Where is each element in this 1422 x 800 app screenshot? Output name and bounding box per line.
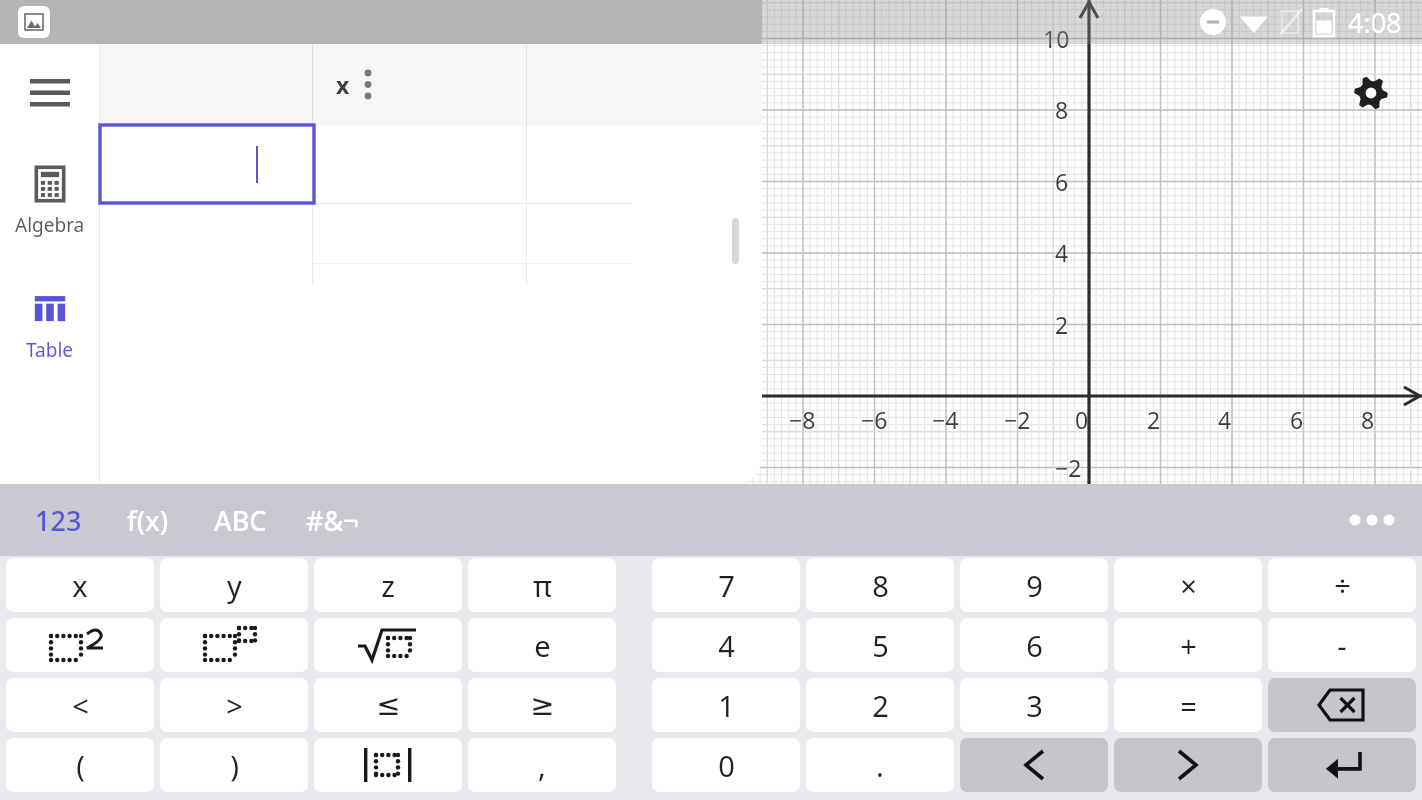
staticText: Algebra [15, 212, 85, 238]
staticText: π [533, 566, 552, 605]
staticText: 8 [1055, 94, 1069, 125]
button[interactable]: 1 [652, 678, 800, 732]
staticText: 0 [718, 746, 735, 785]
staticText: ÷ [1334, 566, 1351, 605]
button[interactable]: Square [6, 618, 154, 672]
button[interactable]: - [1268, 618, 1416, 672]
button[interactable]: ÷ [1268, 558, 1416, 612]
button[interactable]: 4 [652, 618, 800, 672]
button[interactable]: ( [6, 738, 154, 792]
staticText: z [381, 566, 395, 605]
button[interactable]: , [468, 738, 616, 792]
button[interactable]: ABC [194, 484, 286, 556]
button[interactable]: e [468, 618, 616, 672]
button[interactable]: . [806, 738, 954, 792]
staticText: 7 [718, 566, 735, 605]
button[interactable]: Move right [1114, 738, 1262, 792]
staticText: 4:08 [1348, 4, 1402, 41]
staticText: 3 [1026, 686, 1043, 725]
staticText: 2 [872, 686, 889, 725]
staticText: 8 [872, 566, 889, 605]
button[interactable]: Move left [960, 738, 1108, 792]
staticText: 1 [718, 686, 735, 725]
button[interactable]: 9 [960, 558, 1108, 612]
staticText: −8 [789, 404, 816, 435]
button[interactable]: × [1114, 558, 1262, 612]
button[interactable]: 8 [806, 558, 954, 612]
button[interactable]: Absolute value [314, 738, 462, 792]
button[interactable]: y [160, 558, 308, 612]
button[interactable]: ≥ [468, 678, 616, 732]
button[interactable]: Square root [314, 618, 462, 672]
button[interactable]: = [1114, 678, 1262, 732]
staticText: 0 [1075, 404, 1089, 435]
button[interactable]: Image [18, 6, 50, 38]
staticText: 6 [1290, 404, 1304, 435]
button[interactable]: More options [1344, 492, 1400, 548]
button[interactable]: 7 [652, 558, 800, 612]
button[interactable]: Power [160, 618, 308, 672]
staticText: 2 [1147, 404, 1161, 435]
staticText: ≥ [530, 688, 555, 722]
staticText: - [1337, 626, 1347, 665]
button[interactable]: 6 [960, 618, 1108, 672]
staticText: −6 [861, 404, 888, 435]
staticText: Table [26, 337, 74, 363]
staticText: −2 [1055, 452, 1082, 483]
staticText: 8 [1361, 404, 1375, 435]
staticText: 6 [1026, 626, 1043, 665]
staticText: + [1180, 626, 1197, 665]
button[interactable] [100, 125, 314, 203]
staticText: . [876, 746, 884, 785]
button[interactable]: 0 [652, 738, 800, 792]
button[interactable]: 123 [14, 484, 102, 556]
button[interactable]: 5 [806, 618, 954, 672]
staticText: 9 [1026, 566, 1043, 605]
staticText: ( [76, 746, 85, 785]
button[interactable]: 3 [960, 678, 1108, 732]
staticText: 4 [1055, 237, 1069, 268]
staticText: e [534, 626, 551, 665]
staticText: ≤ [376, 688, 401, 722]
button[interactable]: x [6, 558, 154, 612]
staticText: = [1180, 686, 1197, 725]
button[interactable]: ) [160, 738, 308, 792]
button[interactable]: Enter [1268, 738, 1416, 792]
button[interactable]: x [336, 60, 377, 108]
staticText: x [72, 566, 88, 605]
button[interactable]: Table [0, 286, 99, 367]
staticText: 6 [1055, 166, 1069, 197]
staticText: < [72, 686, 89, 725]
button[interactable]: π [468, 558, 616, 612]
staticText: y [227, 566, 242, 605]
button[interactable]: + [1114, 618, 1262, 672]
button[interactable]: > [160, 678, 308, 732]
button[interactable]: Algebra [0, 161, 99, 242]
button[interactable]: #&¬ [286, 484, 378, 556]
staticText: x [336, 69, 350, 100]
button[interactable]: Menu [19, 62, 81, 124]
staticText: f(x) [127, 502, 169, 539]
button[interactable]: Settings [1348, 70, 1394, 116]
staticText: −4 [932, 404, 959, 435]
button[interactable]: < [6, 678, 154, 732]
button[interactable]: Backspace [1268, 678, 1416, 732]
staticText: 2 [1055, 309, 1069, 340]
staticText: 4 [1218, 404, 1232, 435]
staticText: 10 [1043, 23, 1070, 54]
staticText: ) [230, 746, 239, 785]
staticText: , [538, 746, 546, 785]
staticText: ABC [214, 502, 267, 539]
button[interactable]: 2 [806, 678, 954, 732]
button[interactable]: z [314, 558, 462, 612]
button[interactable]: f(x) [102, 484, 194, 556]
staticText: > [226, 686, 243, 725]
button[interactable]: ≤ [314, 678, 462, 732]
staticText: #&¬ [306, 502, 359, 539]
staticText: 4 [718, 626, 735, 665]
staticText: 5 [872, 626, 889, 665]
staticText: × [1180, 566, 1197, 605]
staticText: 123 [35, 502, 82, 539]
staticText: −2 [1004, 404, 1031, 435]
